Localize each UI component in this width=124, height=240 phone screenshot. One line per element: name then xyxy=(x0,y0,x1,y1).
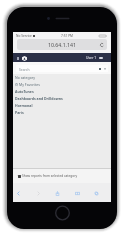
button[interactable]: My Favorites xyxy=(13,81,111,88)
button[interactable]: Bookmarks xyxy=(73,189,82,198)
button[interactable]: Search xyxy=(16,65,108,72)
staticText: Show reports from selected category xyxy=(22,174,78,178)
staticText: Dashboards and Drilldowns xyxy=(15,96,63,101)
staticText: User 1 xyxy=(86,55,97,60)
staticText: Paris xyxy=(15,110,24,115)
button[interactable]: Dashboards and Drilldowns xyxy=(13,95,111,102)
staticText: 10.64.1.141 xyxy=(48,41,76,48)
button[interactable]: Home xyxy=(22,55,27,61)
button[interactable]: Forward xyxy=(34,189,43,198)
button[interactable]: Reload xyxy=(99,42,105,48)
button[interactable]: Back xyxy=(14,189,23,198)
staticText: Search xyxy=(19,67,30,71)
button[interactable]: Paris xyxy=(13,109,111,116)
button[interactable]: 10.64.1.141 xyxy=(17,39,107,50)
staticText: My Favorites xyxy=(19,82,40,87)
button[interactable]: User 1 xyxy=(86,55,103,60)
staticText: No category xyxy=(15,75,36,80)
staticText: AutoTunes xyxy=(15,89,34,94)
button[interactable]: Menu xyxy=(16,55,20,61)
button[interactable]: Show reports from selected category xyxy=(13,169,111,183)
button[interactable]: No category xyxy=(13,74,111,81)
button[interactable]: Tabs xyxy=(92,189,101,198)
button[interactable]: AutoTunes xyxy=(13,88,111,95)
button[interactable]: Share xyxy=(53,189,62,198)
staticText: 7:51 PM xyxy=(61,34,73,38)
button[interactable]: Hormonal xyxy=(13,102,111,109)
staticText: Hormonal xyxy=(15,103,33,108)
staticText: No Service xyxy=(16,34,32,38)
